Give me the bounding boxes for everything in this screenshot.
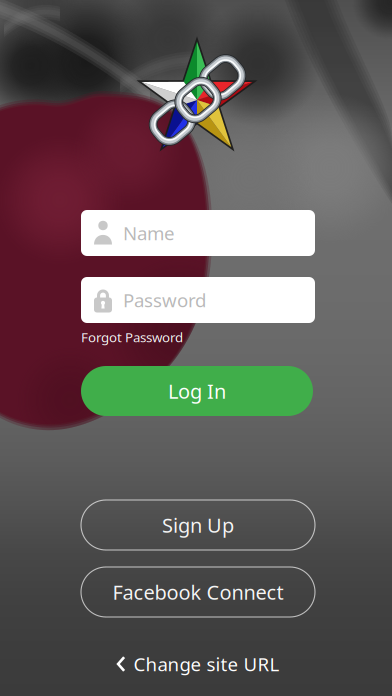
- staticText: Forgot Password: [81, 328, 183, 346]
- staticText: Name: [123, 221, 175, 245]
- staticText: Facebook Connect: [112, 579, 283, 605]
- button[interactable]: Forgot Password: [81, 328, 315, 346]
- staticText: Password: [123, 288, 206, 312]
- button[interactable]: Name: [81, 210, 315, 256]
- button[interactable]: Sign Up: [81, 500, 315, 550]
- button[interactable]: Log In: [81, 366, 313, 416]
- staticText: Change site URL: [133, 652, 279, 676]
- button[interactable]: Change site URL: [81, 647, 315, 681]
- button[interactable]: Facebook Connect: [81, 567, 315, 617]
- staticText: Log In: [168, 378, 226, 404]
- button[interactable]: Password: [81, 277, 315, 323]
- staticText: Sign Up: [162, 512, 234, 538]
